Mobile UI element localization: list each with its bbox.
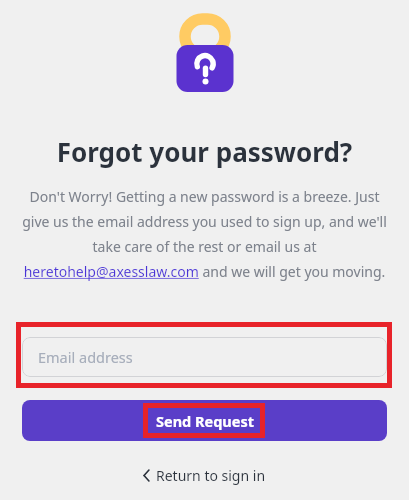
staticText: Return to sign in [156,466,266,485]
button[interactable]: Send Request [22,400,387,441]
button[interactable]: Back [135,463,274,488]
staticText: Send Request [156,411,254,431]
staticText: Email address [38,347,133,367]
staticText: Forgot your password? [0,134,409,169]
staticText: Don't Worry! Getting a new password is a… [18,187,391,281]
other: Back [143,470,150,481]
button[interactable]: Email address [22,337,387,377]
